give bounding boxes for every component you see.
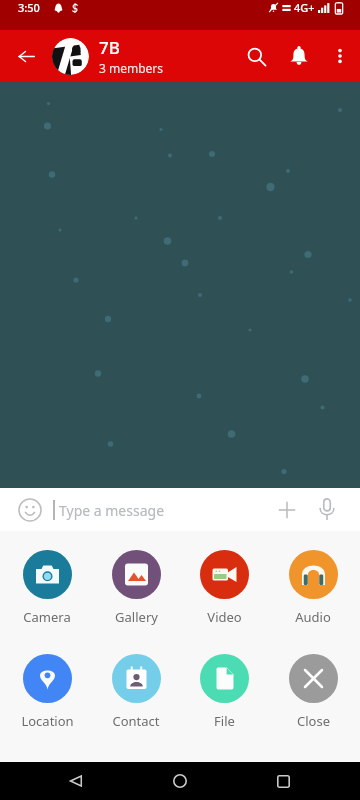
button[interactable]: Recents xyxy=(259,762,307,800)
button[interactable]: Attach xyxy=(269,488,305,531)
button[interactable]: Video xyxy=(183,550,265,626)
staticText: 3 members xyxy=(99,60,164,76)
staticText: Audio xyxy=(295,608,331,626)
button[interactable]: 7B xyxy=(52,30,234,82)
button[interactable]: Contact xyxy=(95,654,177,730)
button[interactable]: Camera xyxy=(6,550,88,626)
button[interactable]: Type a message xyxy=(53,488,269,531)
button[interactable]: File xyxy=(183,654,265,730)
button[interactable]: Search xyxy=(234,30,278,82)
button[interactable]: More options xyxy=(320,30,360,82)
staticText: File xyxy=(214,712,235,730)
button[interactable]: Back xyxy=(0,30,52,82)
button[interactable]: Close xyxy=(272,654,354,730)
button[interactable]: Location xyxy=(6,654,88,730)
staticText: Video xyxy=(207,608,242,626)
staticText: Gallery xyxy=(115,608,158,626)
staticText: 7B xyxy=(99,36,120,59)
button[interactable]: Voice message xyxy=(310,488,344,531)
button[interactable]: Audio xyxy=(272,550,354,626)
staticText: Location xyxy=(21,712,74,730)
button[interactable]: Notifications xyxy=(278,30,320,82)
staticText: Camera xyxy=(23,608,71,626)
staticText: 3:50 xyxy=(18,0,40,15)
button[interactable]: Emoji xyxy=(6,488,53,531)
button[interactable]: Back xyxy=(52,762,100,800)
button[interactable]: Home xyxy=(156,762,204,800)
staticText: Type a message xyxy=(59,501,165,520)
staticText: Close xyxy=(297,712,330,730)
staticText: 4G+ xyxy=(294,0,315,15)
staticText: Contact xyxy=(112,712,160,730)
button[interactable]: Gallery xyxy=(95,550,177,626)
